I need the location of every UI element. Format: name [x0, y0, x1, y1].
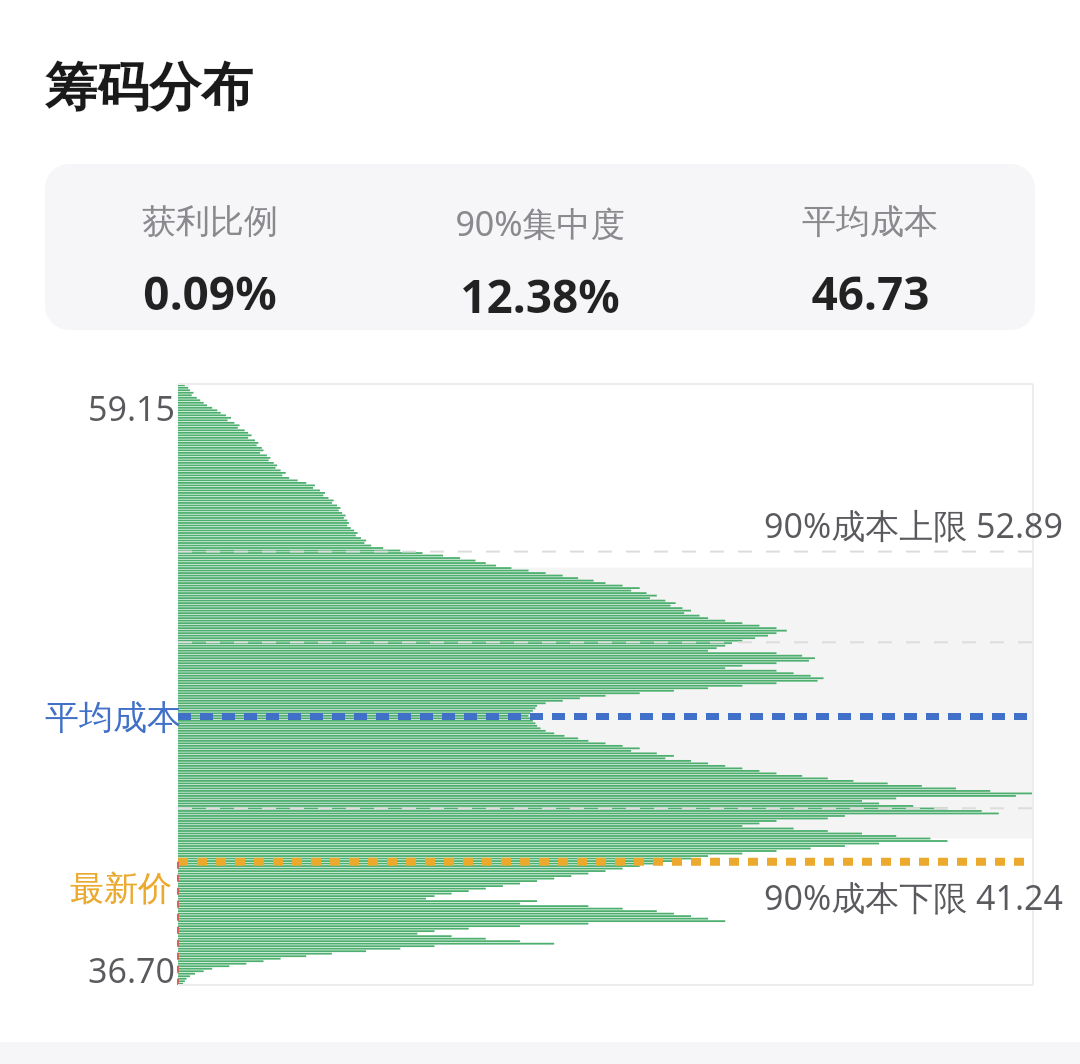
staticText: 最新价 — [70, 867, 172, 910]
staticText: 获利比例 — [142, 200, 278, 243]
button[interactable]: 获利比例 — [45, 164, 375, 330]
staticText: 平均成本 — [802, 200, 938, 243]
staticText: 90%成本上限 52.89 — [764, 502, 1063, 548]
staticText: 12.38% — [460, 264, 620, 327]
button[interactable]: 90%集中度 — [375, 164, 705, 330]
button[interactable]: 平均成本 — [705, 164, 1035, 330]
staticText: 36.70 — [88, 947, 175, 993]
staticText: 0.09% — [143, 261, 277, 324]
staticText: 筹码分布 — [45, 55, 253, 121]
staticText: 90%集中度 — [455, 200, 625, 246]
button[interactable]: 获利比例 — [45, 164, 1035, 330]
staticText: 59.15 — [88, 385, 175, 431]
staticText: 90%成本下限 41.24 — [764, 874, 1063, 920]
staticText: 平均成本 — [45, 696, 181, 739]
staticText: 46.73 — [811, 261, 930, 324]
